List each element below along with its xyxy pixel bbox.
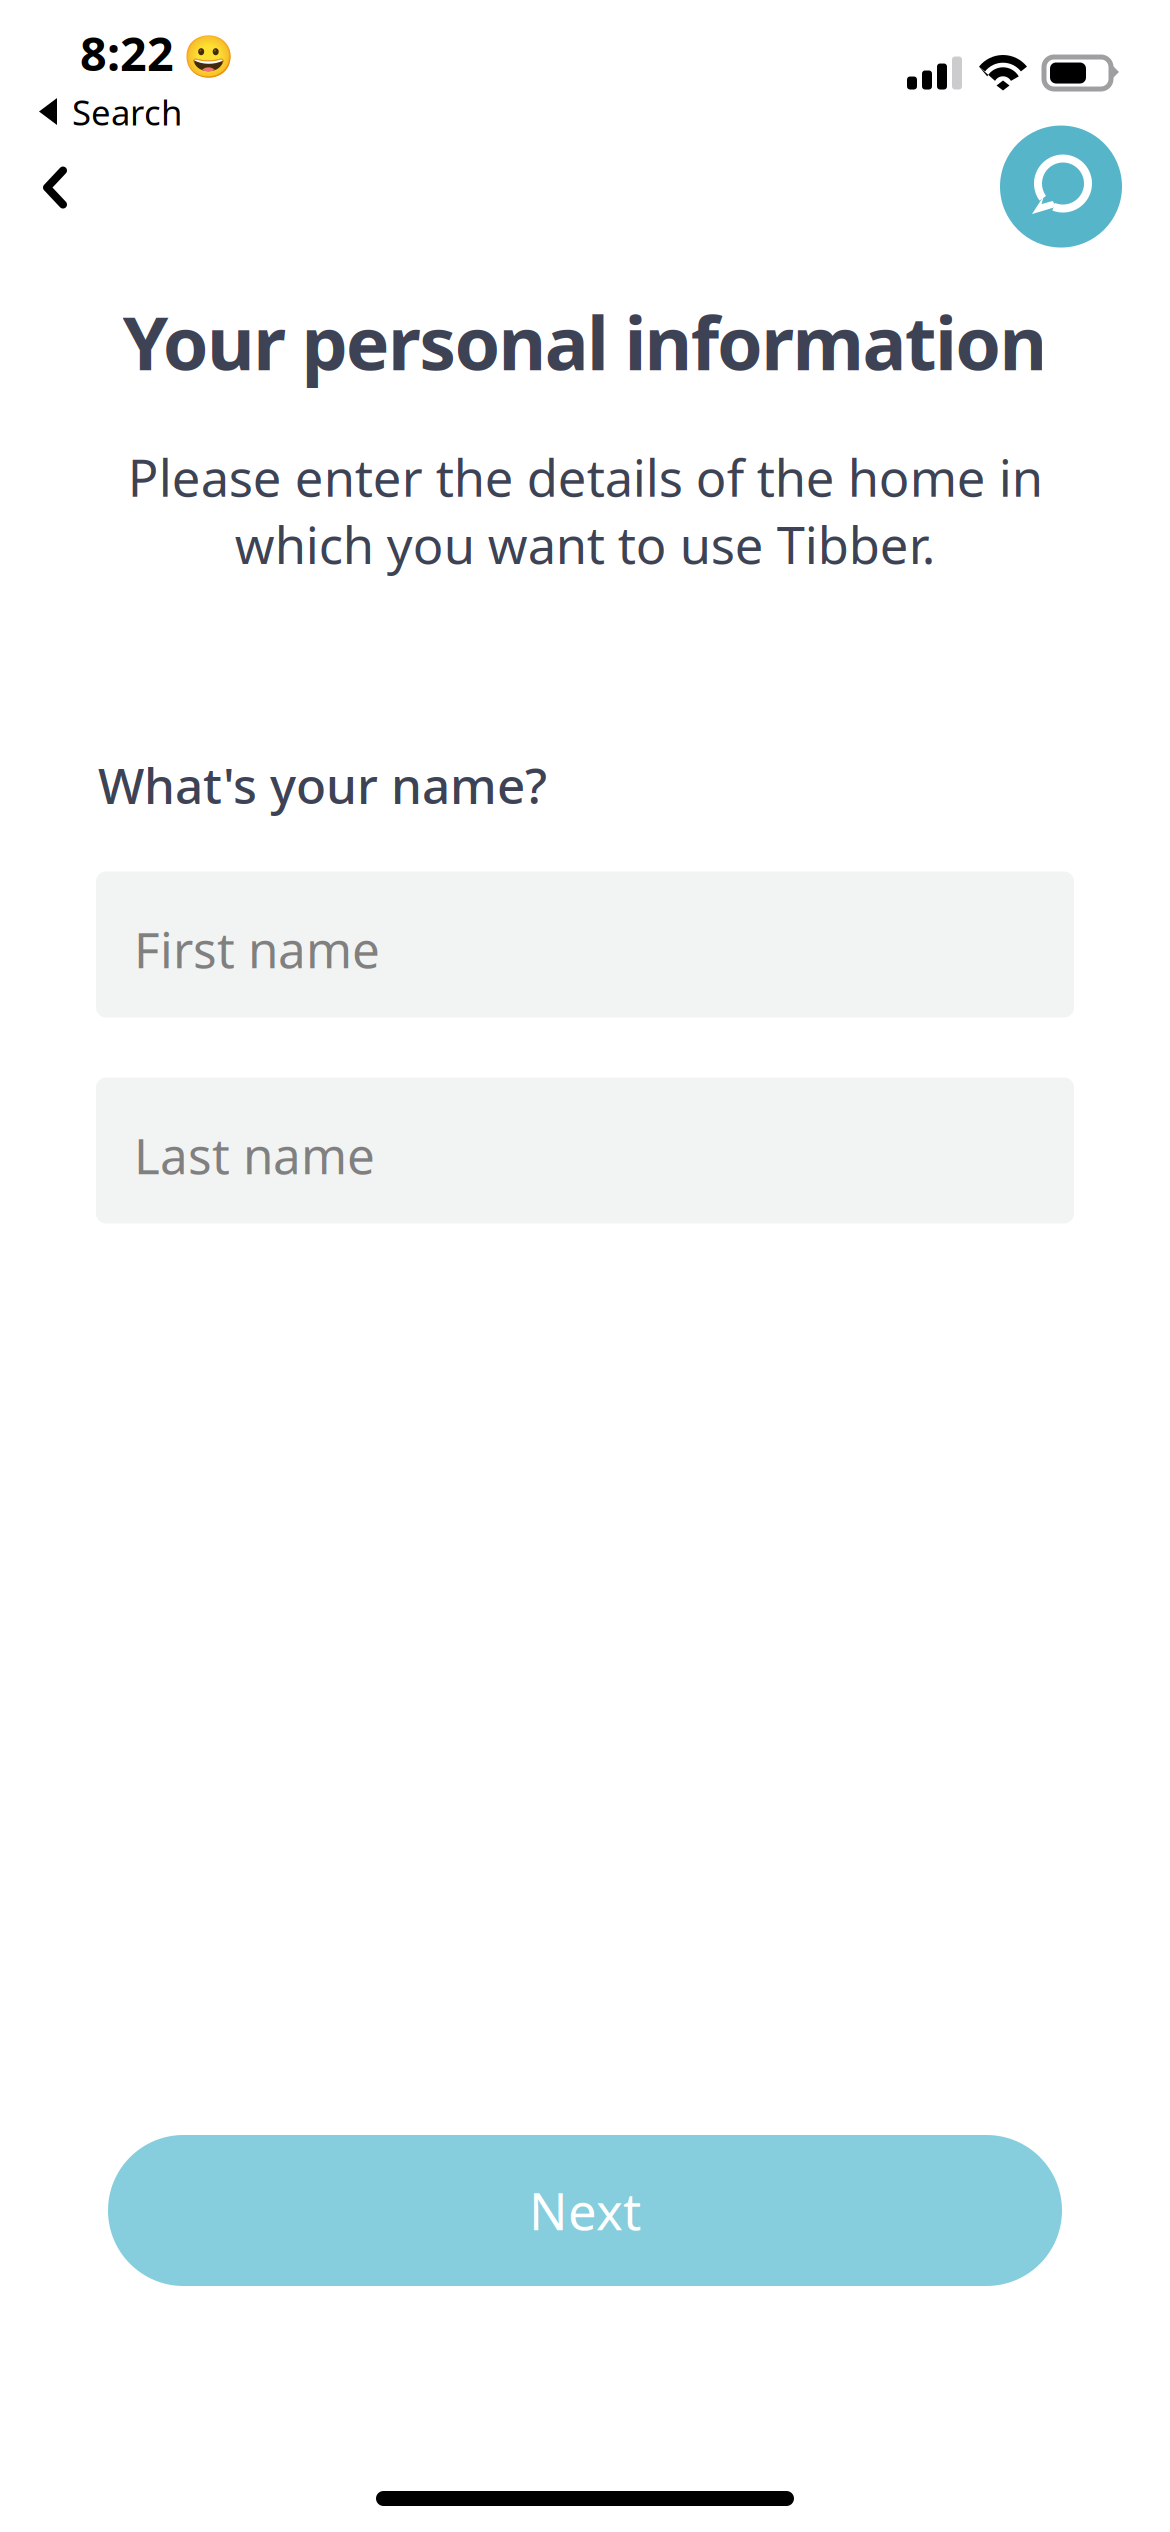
staticText: First name: [134, 916, 380, 982]
staticText: Your personal information: [123, 293, 1047, 390]
button[interactable]: Back: [14, 125, 96, 235]
button[interactable]: Chat with support: [1000, 125, 1122, 247]
staticText: Search: [72, 89, 182, 135]
button[interactable]: Next: [108, 2135, 1062, 2286]
button[interactable]: First name: [96, 871, 1074, 1017]
staticText: 😀: [183, 33, 234, 81]
staticText: Next: [529, 2177, 641, 2244]
button[interactable]: Search: [39, 89, 182, 135]
button[interactable]: Last name: [96, 1077, 1074, 1223]
staticText: What's your name?: [98, 752, 547, 817]
staticText: Last name: [134, 1122, 375, 1188]
staticText: 8:22: [80, 22, 174, 84]
staticText: Please enter the details of the home in …: [127, 443, 1042, 578]
